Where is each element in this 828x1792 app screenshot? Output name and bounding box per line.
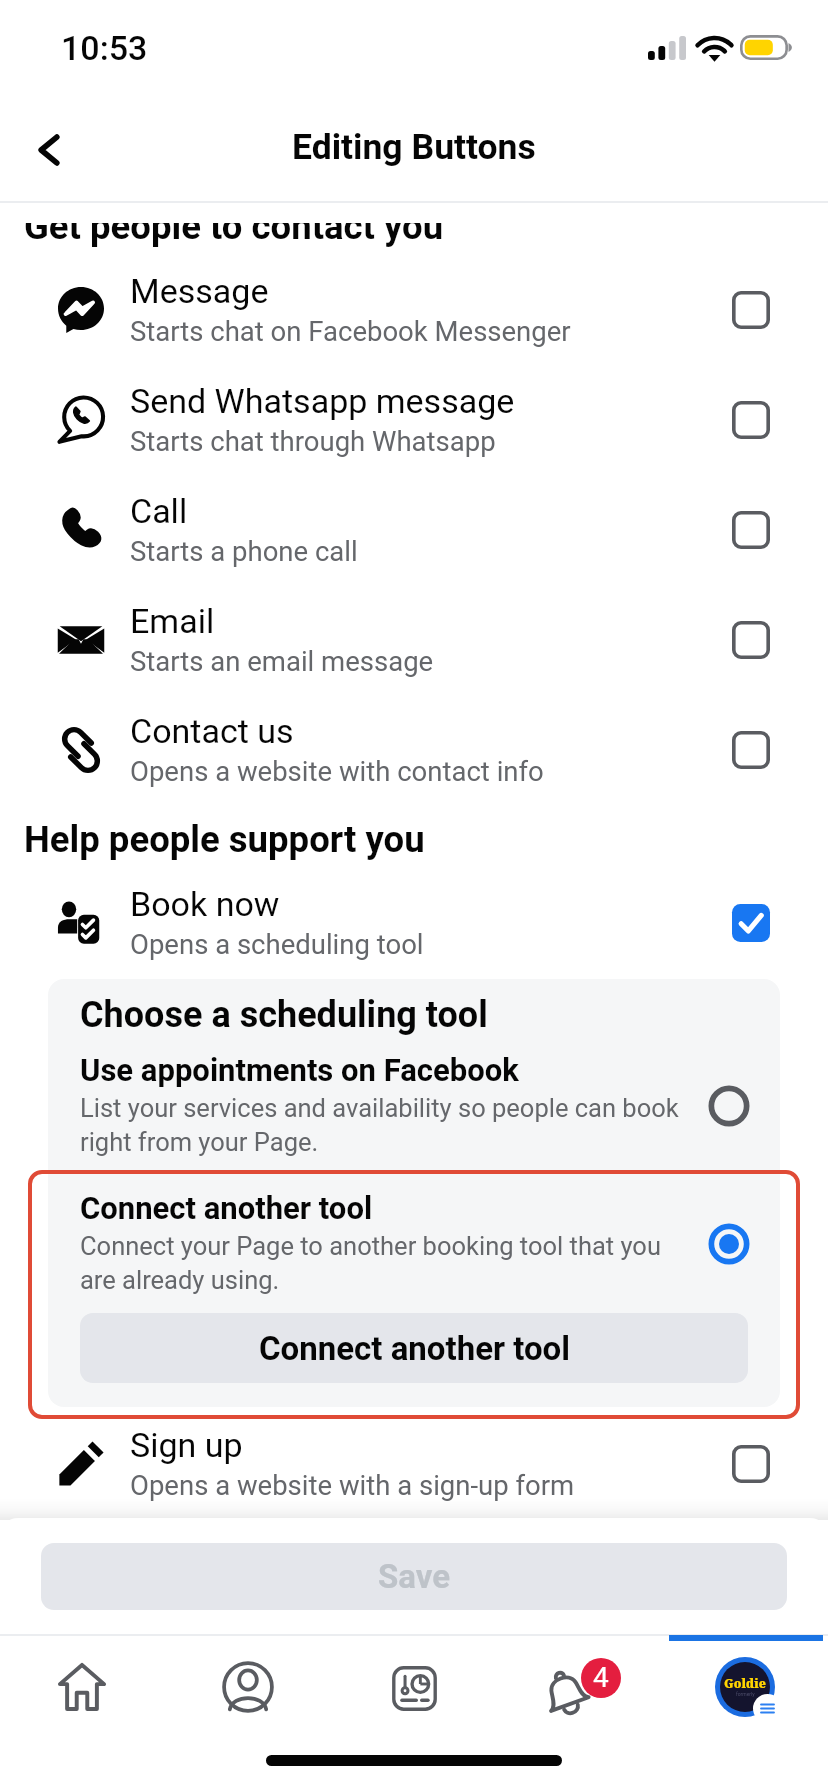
staticText: Choose a scheduling tool (80, 994, 488, 1036)
button[interactable]: Send Whatsapp message (0, 365, 828, 475)
button[interactable]: Contact us (0, 695, 828, 805)
staticText: Get people to contact you (24, 223, 444, 248)
staticText: Starts an email message (130, 645, 434, 677)
staticText: Opens a website with contact info (130, 755, 544, 787)
staticText: Opens a website with a sign-up form (130, 1469, 575, 1501)
staticText: Send Whatsapp message (130, 381, 515, 421)
button[interactable]: Book now (0, 868, 828, 978)
staticText: Connect another tool (259, 1329, 570, 1368)
staticText: Starts a phone call (130, 535, 358, 567)
staticText: Save (378, 1557, 451, 1596)
staticText: 10:53 (61, 28, 148, 68)
staticText: Starts chat on Facebook Messenger (130, 315, 571, 347)
button[interactable]: Email (0, 585, 828, 695)
staticText: List your services and availability so p… (80, 1093, 679, 1157)
button[interactable]: Profile (193, 1639, 303, 1735)
staticText: Email (130, 601, 215, 641)
staticText: 4 (593, 1661, 609, 1694)
button[interactable]: Save (41, 1543, 787, 1610)
button[interactable]: Message (0, 255, 828, 365)
staticText: Starts chat through Whatsapp (130, 425, 496, 457)
staticText: Editing Buttons (292, 126, 536, 168)
button[interactable]: Call (0, 475, 828, 585)
staticText: Goldie (724, 1675, 766, 1691)
staticText: Connect your Page to another booking too… (80, 1231, 661, 1295)
staticText: Use appointments on Facebook (80, 1052, 519, 1088)
button[interactable]: Connect another tool (80, 1313, 748, 1383)
button[interactable]: Home (27, 1639, 137, 1735)
staticText: Book now (130, 884, 280, 924)
staticText: Contact us (130, 711, 294, 751)
staticText: Sign up (130, 1425, 243, 1465)
staticText: Opens a scheduling tool (130, 928, 424, 960)
staticText: Message (130, 271, 269, 311)
button[interactable]: Insights (359, 1640, 469, 1736)
staticText: formerly (736, 1691, 755, 1697)
button[interactable]: Notifications (525, 1639, 635, 1735)
button[interactable]: Use appointments on Facebook (48, 1047, 780, 1167)
button[interactable]: Connect another tool (48, 1185, 780, 1305)
staticText: Connect another tool (80, 1190, 373, 1226)
staticText: Call (130, 491, 188, 531)
button[interactable]: Sign up (0, 1409, 828, 1518)
button[interactable]: Menu (691, 1640, 801, 1736)
button[interactable]: Back (16, 116, 84, 184)
staticText: Help people support you (24, 818, 425, 861)
